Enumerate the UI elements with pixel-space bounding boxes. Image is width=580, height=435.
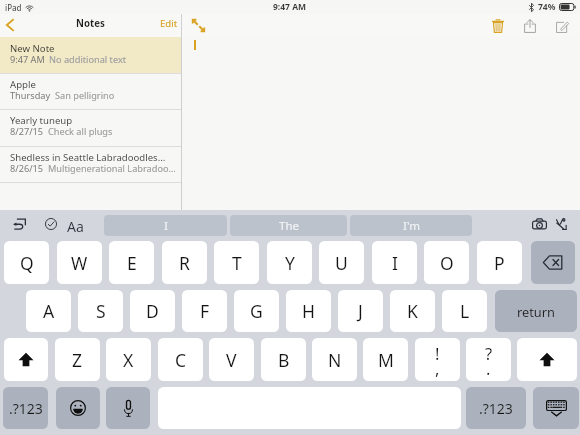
staticText: Yearly tuneup [10,114,73,127]
button[interactable]: Yearly tuneup [0,109,181,146]
staticText: The [279,218,299,234]
button[interactable]: J [338,290,383,332]
staticText: No additional text [49,53,127,66]
button[interactable]: S [78,290,123,332]
button[interactable]: R [162,241,207,284]
button[interactable]: Camera [529,214,549,234]
button[interactable]: Shedless in Seattle Labradoodles… [0,146,181,183]
staticText: 8/26/15 [10,162,44,175]
staticText: Notes [76,17,105,30]
staticText: . [486,357,491,379]
button[interactable]: U [319,241,364,284]
button[interactable]: I [104,215,227,236]
button[interactable]: Share [520,16,540,36]
button[interactable]: I [372,241,417,284]
staticText: M [378,348,394,372]
button[interactable] [533,387,579,429]
button[interactable]: .?123 [466,387,526,429]
button[interactable]: Undo [9,214,29,234]
button[interactable]: H [286,290,331,332]
button[interactable]: Edit [157,14,181,37]
button[interactable]: X [106,338,151,381]
staticText: Q [20,251,34,275]
staticText: .?123 [479,399,513,418]
staticText: B [278,348,290,372]
button[interactable]: O [424,241,469,284]
button[interactable]: Back [1,14,23,37]
staticText: V [226,348,237,372]
button[interactable]: V [209,338,254,381]
button[interactable]: D [130,290,175,332]
button[interactable]: New Note [0,37,181,74]
button[interactable] [531,241,575,284]
button[interactable]: Y [267,241,312,284]
staticText: iPad [5,2,22,13]
staticText: I [392,251,398,275]
staticText: P [494,251,505,275]
button[interactable]: Delete [488,16,508,36]
staticText: Multigenerational Labradoo… [48,162,176,175]
button[interactable]: ? [466,338,511,381]
staticText: R [179,251,190,275]
button[interactable] [106,387,150,429]
button[interactable]: The [230,215,347,236]
button[interactable]: F [182,290,227,332]
button[interactable]: Apple [0,73,181,109]
staticText: N [328,348,342,372]
button[interactable]: N [312,338,357,381]
staticText: .?123 [9,399,43,418]
button[interactable]: T [214,241,259,284]
staticText: Check all plugs [48,125,113,138]
button[interactable] [517,338,577,381]
button[interactable]: Checklist [41,214,61,234]
staticText: ? [485,342,493,364]
staticText: Shedless in Seattle Labradoodles… [10,151,166,164]
button[interactable]: return [495,290,577,332]
button[interactable]: G [234,290,279,332]
button[interactable]: Expand note [190,17,206,33]
button[interactable]: E [109,241,154,284]
staticText: T [232,251,242,275]
staticText: I [164,218,168,234]
staticText: X [123,348,134,372]
button[interactable]: P [477,241,522,284]
staticText: O [440,251,454,275]
button[interactable] [56,387,100,429]
staticText: , [435,357,440,379]
button[interactable]: I'm [350,215,472,236]
staticText: 8/27/15 [10,125,44,138]
staticText: San pelligrino [55,89,115,102]
staticText: Apple [10,78,36,91]
button[interactable]: W [57,241,102,284]
button[interactable]: Draw [552,214,572,234]
button[interactable]: .?123 [3,387,48,429]
staticText: return [517,303,555,320]
staticText: ! [435,342,440,364]
button[interactable]: ! [415,338,460,381]
button[interactable]: A [26,290,71,332]
button[interactable]: K [390,290,435,332]
button[interactable]: C [158,338,203,381]
staticText: Thursday [10,89,51,102]
staticText: K [407,299,418,323]
button[interactable]: New note [552,16,572,36]
staticText: New Note [10,42,55,55]
button[interactable]: L [442,290,487,332]
staticText: I'm [403,218,420,234]
button[interactable]: B [261,338,306,381]
staticText: C [175,348,187,372]
button[interactable]: Q [4,241,49,284]
staticText: U [335,251,348,275]
staticText: D [146,299,159,323]
button[interactable]: M [363,338,408,381]
button[interactable]: Aa [65,216,85,236]
button[interactable] [4,338,48,381]
staticText: J [358,299,363,323]
staticText: H [302,299,315,323]
staticText: 9:47 AM [273,1,307,13]
staticText: 74% [538,1,556,13]
staticText: 9:47 AM [10,53,45,66]
button[interactable]: Z [55,338,100,381]
staticText: Y [285,251,295,275]
